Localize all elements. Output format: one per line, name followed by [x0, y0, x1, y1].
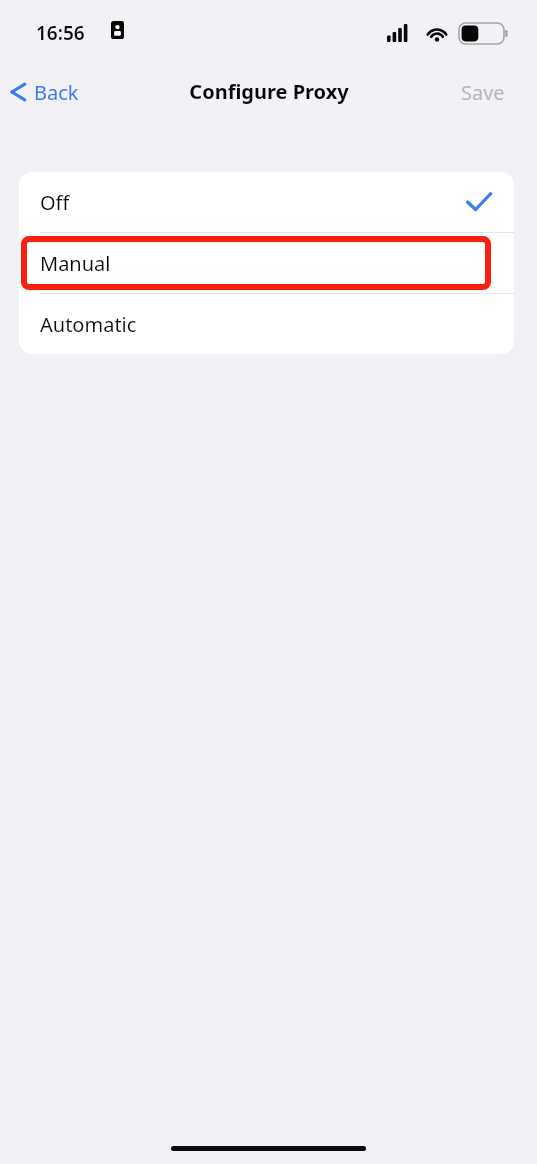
staticText: Configure Proxy [189, 78, 349, 105]
button[interactable]: Off [19, 172, 514, 232]
staticText: Back [34, 79, 79, 106]
button[interactable]: Manual [19, 233, 514, 293]
button[interactable]: Save [455, 72, 511, 112]
staticText: Off [40, 189, 70, 216]
staticText: Automatic [40, 311, 137, 338]
button[interactable]: Back [4, 72, 85, 112]
staticText: Manual [40, 250, 111, 277]
button[interactable]: Automatic [19, 294, 514, 354]
staticText: Save [461, 79, 505, 106]
staticText: 16:56 [36, 20, 85, 46]
